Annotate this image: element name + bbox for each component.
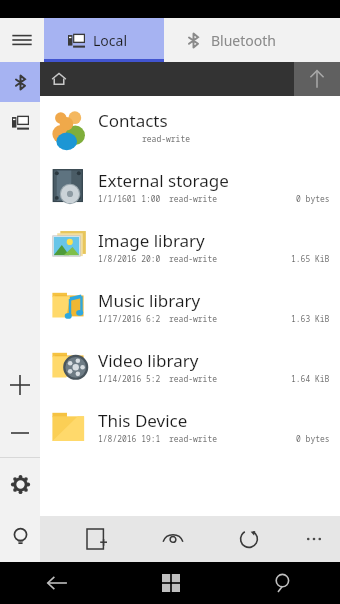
button[interactable]: This Device xyxy=(40,396,340,456)
button[interactable]: More xyxy=(294,519,334,559)
button[interactable]: Music library xyxy=(40,276,340,336)
button[interactable]: Tips xyxy=(0,510,40,562)
button[interactable]: Image library xyxy=(40,216,340,276)
staticText: 1.65 KiB xyxy=(291,253,330,264)
staticText: 1.63 KiB xyxy=(291,313,330,324)
button[interactable]: Bluetooth xyxy=(0,62,40,102)
staticText: Image library xyxy=(98,229,205,252)
button[interactable]: Search xyxy=(227,562,340,604)
staticText: Local xyxy=(93,31,127,50)
staticText: read-write xyxy=(169,373,217,384)
staticText: Video library xyxy=(98,349,199,372)
button[interactable]: Back xyxy=(0,562,114,604)
button[interactable]: Settings xyxy=(0,458,40,510)
button[interactable]: Refresh xyxy=(226,516,272,562)
button[interactable]: External storage xyxy=(40,156,340,216)
staticText: 1.64 KiB xyxy=(291,373,330,384)
staticText: 1/8/2016 20:0 xyxy=(98,253,161,264)
staticText: Music library xyxy=(98,289,201,312)
staticText: 0 bytes xyxy=(296,433,330,444)
staticText: Contacts xyxy=(98,109,168,132)
button[interactable]: Local xyxy=(0,102,40,142)
staticText: Bluetooth xyxy=(211,31,276,50)
staticText: read-write xyxy=(169,193,217,204)
button[interactable]: Local xyxy=(44,18,164,62)
button[interactable]: View xyxy=(150,516,196,562)
button[interactable]: Zoom in xyxy=(0,361,40,409)
button[interactable]: Zoom out xyxy=(0,409,40,457)
staticText: read-write xyxy=(169,253,217,264)
staticText: 1/8/2016 19:1 xyxy=(98,433,161,444)
staticText: 1/17/2016 6:2 xyxy=(98,313,161,324)
staticText: 0 bytes xyxy=(296,193,330,204)
button[interactable]: New file xyxy=(74,516,120,562)
staticText: read-write xyxy=(169,433,217,444)
button[interactable]: Video library xyxy=(40,336,340,396)
button[interactable]: Bluetooth xyxy=(164,18,340,62)
button[interactable]: Start xyxy=(114,562,227,604)
button[interactable]: Up xyxy=(294,62,340,96)
staticText: read-write xyxy=(142,133,190,144)
staticText: External storage xyxy=(98,169,229,192)
staticText: 1/14/2016 5:2 xyxy=(98,373,161,384)
staticText: This Device xyxy=(98,409,188,432)
button[interactable]: Menu xyxy=(0,18,44,62)
staticText: read-write xyxy=(169,313,217,324)
button[interactable]: Contacts xyxy=(40,96,340,156)
button[interactable] xyxy=(40,62,294,96)
staticText: 1/1/1601 1:00 xyxy=(98,193,161,204)
